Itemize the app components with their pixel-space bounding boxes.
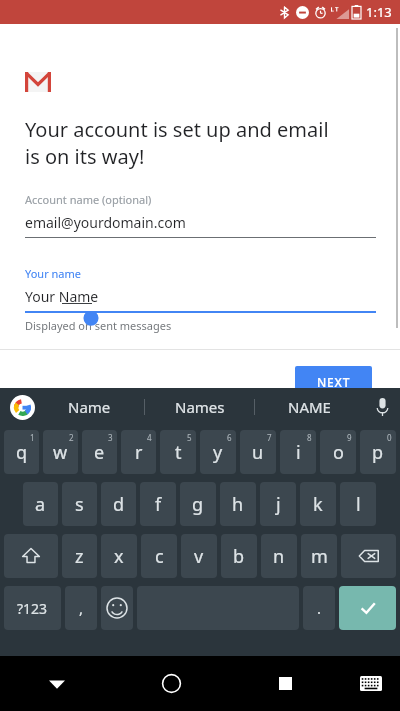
- staticText: n: [273, 544, 285, 569]
- button[interactable]: r: [121, 430, 156, 474]
- staticText: y: [213, 440, 223, 465]
- button[interactable]: Hide keyboard: [0, 656, 114, 711]
- button[interactable]: Voice input: [364, 388, 400, 426]
- staticText: Your Name: [25, 287, 99, 306]
- staticText: a: [35, 492, 46, 517]
- button[interactable]: Google: [10, 395, 35, 420]
- staticText: ,: [79, 598, 84, 618]
- button[interactable]: k: [300, 482, 336, 526]
- staticText: d: [113, 492, 125, 517]
- button[interactable]: c: [141, 534, 177, 578]
- staticText: 0: [387, 432, 392, 443]
- button[interactable]: Name: [35, 388, 144, 426]
- staticText: l: [356, 492, 361, 517]
- button[interactable]: v: [181, 534, 217, 578]
- staticText: m: [311, 544, 328, 569]
- button[interactable]: ?123: [4, 586, 61, 630]
- staticText: k: [313, 492, 323, 517]
- staticText: Your name: [25, 266, 81, 281]
- button[interactable]: n: [261, 534, 297, 578]
- staticText: f: [155, 492, 162, 517]
- staticText: Your account is set up and email is on i…: [25, 116, 329, 170]
- staticText: c: [155, 544, 164, 569]
- button[interactable]: l: [340, 482, 376, 526]
- button[interactable]: Your Name: [25, 287, 376, 313]
- staticText: ?123: [17, 599, 48, 618]
- button[interactable]: x: [101, 534, 137, 578]
- staticText: 8: [307, 432, 312, 443]
- button[interactable]: q: [4, 430, 39, 474]
- staticText: 4: [147, 432, 152, 443]
- staticText: 3: [108, 432, 113, 443]
- staticText: g: [192, 492, 204, 517]
- staticText: s: [75, 492, 84, 517]
- button[interactable]: i: [280, 430, 316, 474]
- staticText: v: [194, 544, 204, 569]
- staticText: r: [135, 440, 143, 465]
- button[interactable]: Home: [114, 656, 228, 711]
- button[interactable]: NEXT: [295, 366, 372, 397]
- button[interactable]: Emoji: [101, 586, 133, 630]
- staticText: t: [175, 440, 182, 465]
- button[interactable]: y: [200, 430, 236, 474]
- staticText: e: [94, 440, 105, 465]
- staticText: o: [333, 440, 344, 465]
- button[interactable]: Enter: [339, 586, 396, 630]
- staticText: .: [317, 598, 322, 618]
- button[interactable]: m: [301, 534, 337, 578]
- button[interactable]: f: [140, 482, 176, 526]
- staticText: 9: [347, 432, 352, 443]
- button[interactable]: Backspace: [341, 534, 396, 578]
- staticText: u: [252, 440, 264, 465]
- staticText: 1: [30, 432, 35, 443]
- button[interactable]: p: [360, 430, 396, 474]
- staticText: x: [114, 544, 124, 569]
- staticText: Names: [175, 397, 225, 417]
- staticText: 7: [267, 432, 272, 443]
- staticText: NAME: [288, 397, 331, 417]
- button[interactable]: t: [160, 430, 196, 474]
- button[interactable]: Switch keyboard: [342, 656, 400, 711]
- staticText: h: [232, 492, 244, 517]
- button[interactable]: h: [220, 482, 256, 526]
- staticText: Name: [68, 397, 111, 417]
- button[interactable]: .: [303, 586, 335, 630]
- staticText: i: [296, 440, 301, 465]
- staticText: Account name (optional): [25, 192, 152, 207]
- staticText: NEXT: [317, 374, 351, 390]
- button[interactable]: w: [43, 430, 78, 474]
- button[interactable]: j: [260, 482, 296, 526]
- button[interactable]: Recents: [228, 656, 342, 711]
- staticText: q: [16, 440, 28, 465]
- staticText: 1:13: [366, 3, 392, 21]
- button[interactable]: u: [240, 430, 276, 474]
- button[interactable]: e: [82, 430, 117, 474]
- staticText: email@yourdomain.com: [25, 213, 186, 232]
- button[interactable]: email@yourdomain.com: [25, 213, 376, 238]
- staticText: z: [75, 544, 84, 569]
- button[interactable]: z: [62, 534, 97, 578]
- staticText: Displayed on sent messages: [25, 318, 172, 333]
- button[interactable]: a: [23, 482, 58, 526]
- staticText: 5: [187, 432, 192, 443]
- button[interactable]: NAME: [255, 388, 364, 426]
- staticText: w: [53, 440, 68, 465]
- button[interactable]: s: [62, 482, 97, 526]
- staticText: p: [372, 440, 384, 465]
- button[interactable]: b: [221, 534, 257, 578]
- staticText: b: [233, 544, 245, 569]
- button[interactable]: ,: [65, 586, 97, 630]
- button[interactable]: Names: [145, 388, 254, 426]
- button[interactable]: Shift: [4, 534, 58, 578]
- button[interactable]: g: [180, 482, 216, 526]
- button[interactable]: o: [320, 430, 356, 474]
- staticText: 6: [227, 432, 232, 443]
- button[interactable]: d: [101, 482, 136, 526]
- staticText: j: [276, 492, 281, 517]
- staticText: 2: [69, 432, 74, 443]
